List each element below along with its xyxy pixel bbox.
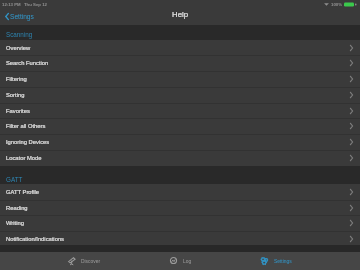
button[interactable]: Settings [228, 252, 324, 270]
staticText: GATT Profile [6, 189, 39, 195]
staticText: Discover [81, 259, 101, 264]
staticText: Scanning [6, 31, 33, 38]
button[interactable]: Favorites [0, 103, 360, 119]
button[interactable]: GATT Profile [0, 184, 360, 200]
staticText: Thu Sep 12 [24, 2, 47, 7]
button[interactable]: Log [132, 252, 228, 270]
staticText: GATT [6, 176, 23, 183]
button[interactable]: Filtering [0, 71, 360, 87]
button[interactable]: Settings [5, 13, 34, 20]
staticText: Ignoring Devices [6, 139, 50, 145]
staticText: Settings [10, 13, 34, 20]
button[interactable]: Notification/Indications [0, 231, 360, 245]
staticText: Locator Mode [6, 155, 42, 161]
button[interactable]: Overview [0, 40, 360, 56]
staticText: Overview [6, 45, 31, 51]
button[interactable]: Reading [0, 200, 360, 216]
staticText: Filtering [6, 76, 27, 82]
button[interactable]: Search Function [0, 55, 360, 71]
staticText: 100% [331, 2, 342, 7]
staticText: Reading [6, 205, 28, 211]
staticText: Notification/Indications [6, 236, 65, 242]
button[interactable]: Ignoring Devices [0, 134, 360, 150]
button[interactable]: Discover [36, 252, 132, 270]
staticText: Favorites [6, 108, 30, 114]
staticText: Log [183, 259, 192, 264]
staticText: Writing [6, 220, 24, 226]
button[interactable]: Writing [0, 215, 360, 231]
staticText: Sorting [6, 92, 25, 98]
staticText: Filter all Others [6, 123, 46, 129]
button[interactable]: Locator Mode [0, 150, 360, 166]
button[interactable]: Sorting [0, 87, 360, 103]
button[interactable]: Filter all Others [0, 118, 360, 134]
staticText: Settings [274, 259, 292, 264]
staticText: Help [172, 10, 189, 19]
staticText: Search Function [6, 60, 49, 66]
staticText: 12:13 PM [2, 2, 21, 7]
